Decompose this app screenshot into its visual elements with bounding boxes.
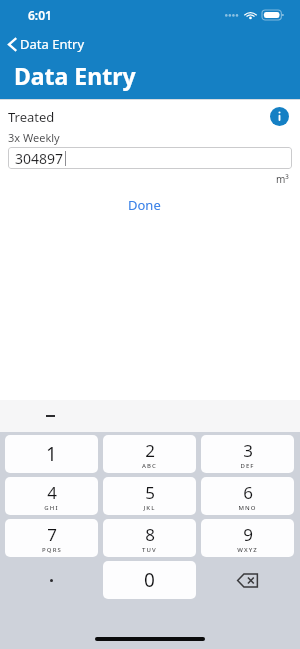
staticText: Treated [8, 108, 55, 126]
staticText: 8 [145, 523, 155, 546]
staticText: 3x Weekly [8, 130, 60, 145]
staticText: PQRS [42, 546, 62, 554]
staticText: 2 [145, 439, 155, 462]
button[interactable]: 4 [5, 477, 98, 515]
staticText: m³ [276, 172, 289, 186]
button[interactable]: Decimal point [5, 561, 98, 599]
staticText: 9 [243, 523, 253, 546]
staticText: 0 [144, 567, 155, 593]
staticText: TUV [142, 546, 157, 554]
staticText: 5 [145, 481, 155, 504]
staticText: JKL [143, 504, 156, 512]
button[interactable]: 304897 [8, 147, 292, 169]
button[interactable]: 9 [201, 519, 294, 557]
button[interactable]: 1 [5, 435, 98, 473]
staticText: 6 [243, 481, 253, 504]
button[interactable]: Data Entry [0, 33, 95, 55]
button[interactable]: 6 [201, 477, 294, 515]
staticText: 304897 [15, 149, 64, 168]
staticText: ABC [142, 462, 157, 470]
staticText: GHI [44, 504, 59, 512]
button[interactable]: Minus sign [38, 407, 63, 425]
staticText: DEF [240, 462, 255, 470]
staticText: Done [128, 196, 161, 214]
button[interactable]: Information [270, 107, 289, 126]
button[interactable]: 0 [103, 561, 196, 599]
staticText: Data Entry [14, 60, 136, 91]
staticText: 7 [47, 523, 57, 546]
staticText: 4 [47, 481, 57, 504]
staticText: Data Entry [20, 35, 85, 53]
button[interactable]: 8 [103, 519, 196, 557]
staticText: 3 [243, 439, 253, 462]
staticText: 6:01 [28, 7, 52, 23]
staticText: 1 [46, 441, 57, 467]
button[interactable]: 5 [103, 477, 196, 515]
staticText: WXYZ [237, 546, 258, 554]
button[interactable]: 7 [5, 519, 98, 557]
staticText: MNO [238, 504, 257, 512]
button[interactable]: 2 [103, 435, 196, 473]
button[interactable]: 3 [201, 435, 294, 473]
button[interactable]: Done [118, 192, 171, 218]
button[interactable]: Delete [201, 561, 294, 599]
